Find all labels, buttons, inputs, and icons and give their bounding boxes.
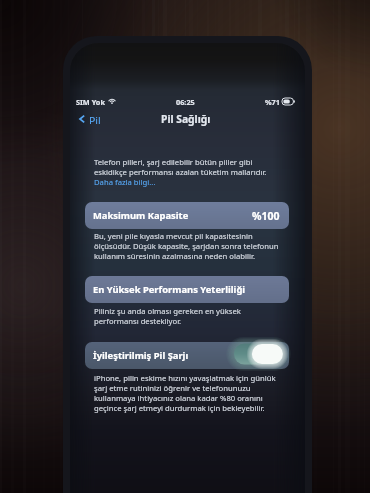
staticText: Piliniz şu anda olması gereken en yüksek… [94,306,241,326]
staticText: iPhone, pilin eskime hızını yavaşlatmak … [94,373,276,413]
button[interactable]: İyileştirilmiş Pil Şarjı [85,342,289,369]
staticText: SIM Yok [76,97,105,105]
button[interactable]: İyileştirilmiş Pil Şarjı anahtarı [234,336,283,372]
staticText: Pil [89,114,101,124]
staticText: %71 [265,97,280,105]
staticText: Telefon pilleri, şarj edilebilir bütün p… [94,157,267,177]
button[interactable]: Maksimum Kapasite [85,202,289,229]
button[interactable]: Daha fazla bilgi... [94,177,156,187]
staticText: İyileştirilmiş Pil Şarjı [93,349,189,362]
staticText: Pil Sağlığı [161,112,211,126]
staticText: %100 [252,209,280,223]
staticText: 06:25 [176,97,195,105]
staticText: En Yüksek Performans Yeterliliği [93,283,246,296]
button[interactable]: Pil [74,112,104,126]
button[interactable]: En Yüksek Performans Yeterliliği [85,276,289,303]
staticText: Bu, yeni pile kıyasla mevcut pil kapasit… [94,231,279,261]
staticText: Maksimum Kapasite [93,209,189,222]
